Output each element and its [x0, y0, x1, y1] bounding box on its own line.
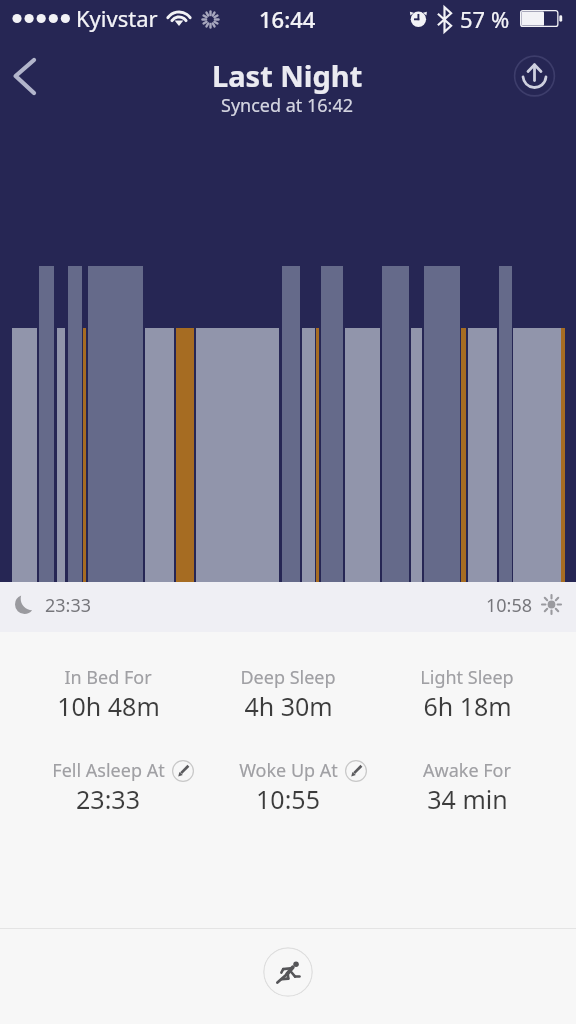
staticText: Light Sleep: [420, 665, 514, 690]
staticText: Kyivstar: [76, 3, 158, 33]
button[interactable]: Fell Asleep At: [18, 758, 198, 820]
button[interactable]: Deep Sleep: [198, 665, 378, 727]
staticText: 6h 18m: [423, 689, 512, 723]
staticText: 10:55: [256, 782, 320, 816]
button[interactable]: Sleep start: [8, 587, 42, 621]
button[interactable]: Light Sleep: [377, 665, 557, 727]
staticText: 34 min: [427, 782, 508, 816]
staticText: In Bed For: [64, 665, 152, 690]
button[interactable]: Wake time: [534, 587, 568, 621]
staticText: 57 %: [460, 4, 510, 34]
staticText: 10h 48m: [57, 689, 160, 723]
staticText: Deep Sleep: [240, 665, 336, 690]
staticText: Awake For: [423, 758, 511, 783]
button[interactable]: Activity: [263, 947, 313, 997]
staticText: 23:33: [45, 593, 92, 618]
staticText: 4h 30m: [244, 689, 333, 723]
button[interactable]: Woke Up At: [198, 758, 378, 820]
staticText: Synced at 16:42: [221, 93, 354, 118]
staticText: Last Night: [212, 56, 363, 95]
staticText: 10:58: [486, 593, 533, 618]
button[interactable]: In Bed For: [18, 665, 198, 727]
staticText: Woke Up At: [239, 758, 338, 783]
staticText: Fell Asleep At: [52, 758, 165, 783]
staticText: 16:44: [259, 4, 316, 34]
button[interactable]: Awake For: [377, 758, 557, 820]
button[interactable]: Share: [512, 53, 557, 98]
button[interactable]: Back: [0, 50, 56, 108]
staticText: 23:33: [76, 782, 140, 816]
